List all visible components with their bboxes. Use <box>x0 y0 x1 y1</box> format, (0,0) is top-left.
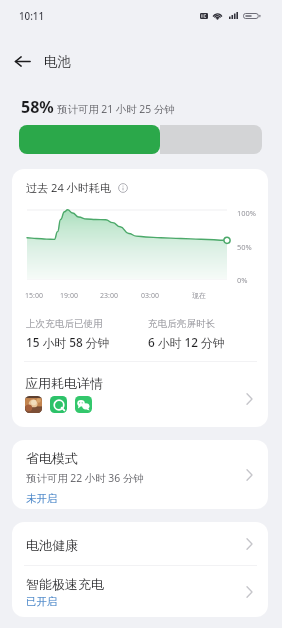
staticText: 15 小时 58 分钟 <box>26 334 110 350</box>
staticText: 19:00 <box>60 291 78 301</box>
button[interactable]: 电池健康 <box>12 522 268 565</box>
staticText: 电池 <box>44 53 71 70</box>
staticText: 现在 <box>192 291 206 300</box>
staticText: 23:00 <box>100 291 118 301</box>
staticText: 100% <box>237 208 257 218</box>
staticText: 预计可用 21 小时 25 分钟 <box>57 102 175 116</box>
staticText: 智能极速充电 <box>26 576 104 592</box>
staticText: 0% <box>237 275 248 285</box>
staticText: 58% <box>21 96 54 118</box>
staticText: 50% <box>237 242 252 252</box>
staticText: 预计可用 22 小时 36 分钟 <box>26 471 144 485</box>
staticText: 应用耗电详情 <box>25 375 103 391</box>
staticText: 15:00 <box>25 291 43 301</box>
staticText: 电池健康 <box>26 537 78 553</box>
staticText: 已开启 <box>26 595 58 608</box>
button[interactable]: 智能极速充电 <box>12 566 268 617</box>
button[interactable]: 省电模式 <box>12 440 268 509</box>
staticText: 10:11 <box>19 10 45 23</box>
staticText: 过去 24 小时耗电 <box>26 180 112 195</box>
staticText: 省电模式 <box>26 450 78 466</box>
button[interactable]: 应用耗电详情 <box>12 366 268 427</box>
button[interactable]: Back <box>6 45 38 77</box>
staticText: 03:00 <box>141 291 159 301</box>
staticText: 未开启 <box>26 492 58 505</box>
staticText: 上次充电后已使用 <box>26 318 103 330</box>
staticText: 充电后亮屏时长 <box>148 318 216 330</box>
staticText: 6 小时 12 分钟 <box>148 334 225 350</box>
